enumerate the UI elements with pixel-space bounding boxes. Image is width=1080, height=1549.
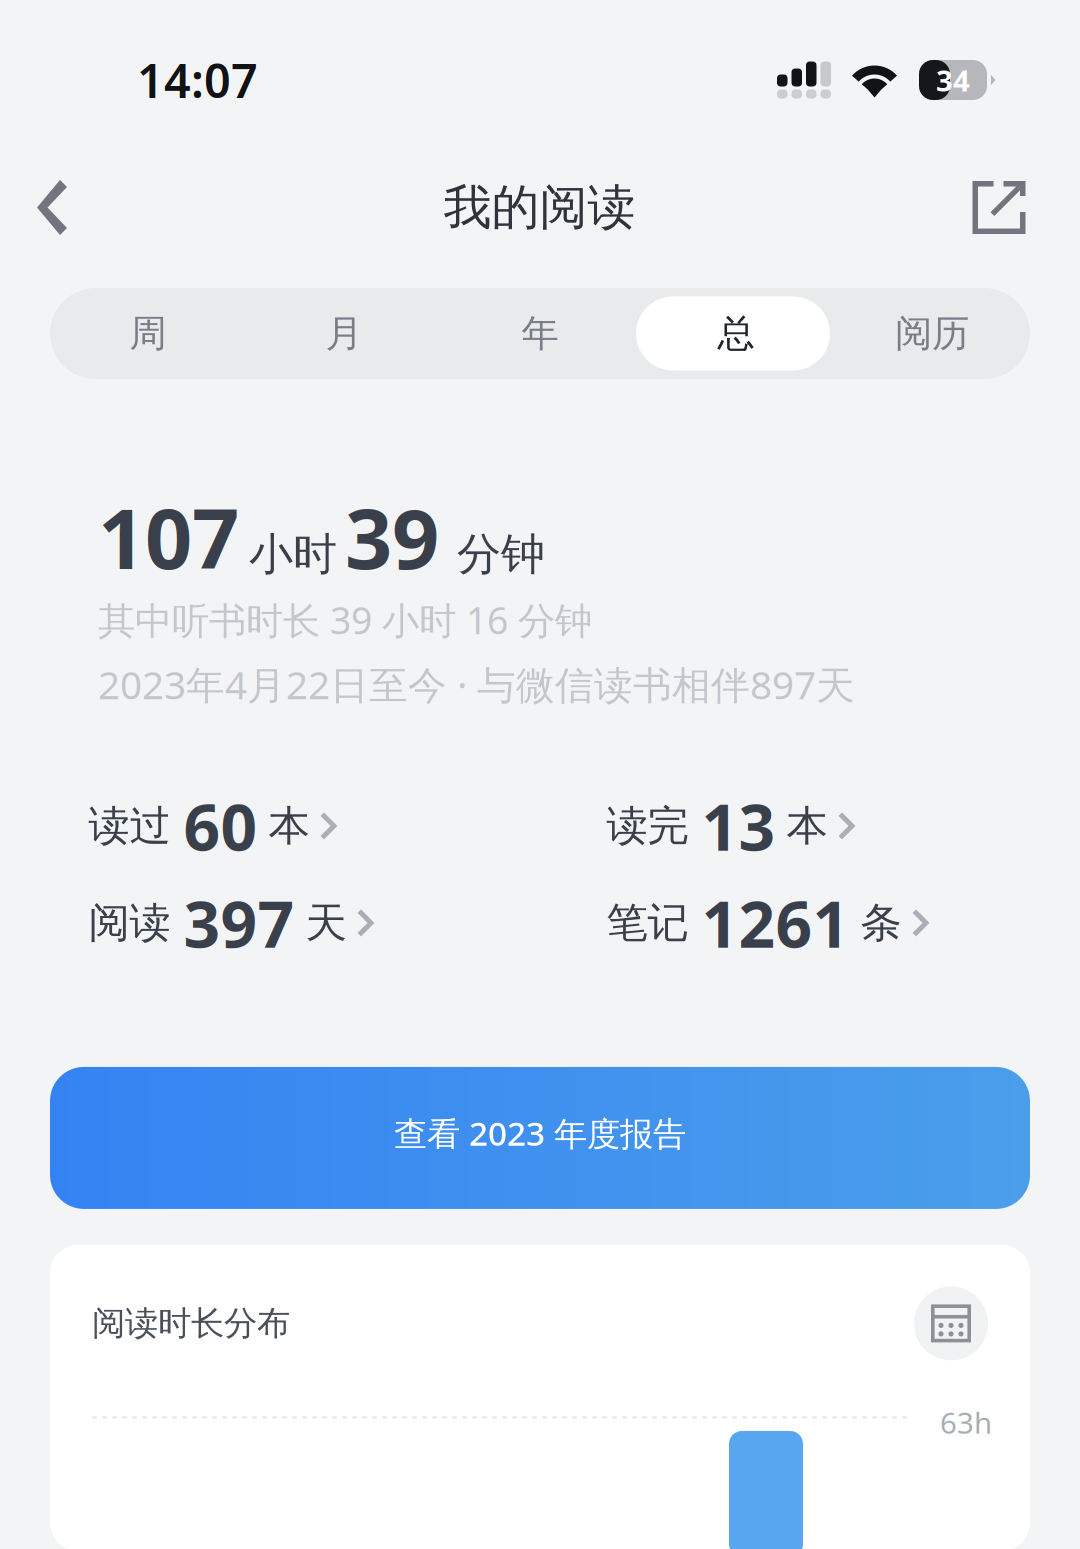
staticText: 13 xyxy=(701,783,775,868)
button[interactable]: 阅历 xyxy=(834,288,1030,379)
button[interactable]: 周 xyxy=(50,288,246,379)
staticText: 小时 xyxy=(249,527,337,581)
button[interactable]: 月 xyxy=(246,288,442,379)
staticText: 总 xyxy=(717,311,754,356)
staticText: 34 xyxy=(936,60,970,99)
staticText: 阅读 xyxy=(88,897,170,948)
staticText: 63h xyxy=(940,1403,992,1442)
button[interactable]: 读过 xyxy=(88,793,606,859)
button[interactable]: 笔记 xyxy=(606,890,1023,956)
button[interactable]: 年 xyxy=(442,288,638,379)
staticText: 107 xyxy=(98,482,239,592)
staticText: 条 xyxy=(860,897,901,948)
staticText: 本 xyxy=(786,800,827,851)
staticText: 39 xyxy=(345,482,439,592)
staticText: 我的阅读 xyxy=(443,178,635,237)
button[interactable]: 查看 2023 年度报告 xyxy=(50,1067,1030,1209)
staticText: 读完 xyxy=(606,800,688,851)
staticText: 年 xyxy=(521,311,558,356)
staticText: 查看 2023 年度报告 xyxy=(394,1111,686,1155)
staticText: 月 xyxy=(325,311,362,356)
button[interactable]: Share xyxy=(956,157,1042,257)
staticText: 读过 xyxy=(88,800,170,851)
button[interactable]: Back xyxy=(9,157,95,257)
staticText: 其中听书时长 39 小时 16 分钟 xyxy=(98,595,592,645)
staticText: 天 xyxy=(305,897,346,948)
staticText: 笔记 xyxy=(606,897,688,948)
button[interactable]: 总 xyxy=(638,288,834,379)
staticText: 14:07 xyxy=(137,49,258,111)
staticText: 周 xyxy=(129,311,166,356)
staticText: 阅历 xyxy=(895,311,969,356)
button[interactable]: 读完 xyxy=(606,793,1023,859)
staticText: 1261 xyxy=(701,880,849,965)
staticText: 阅读时长分布 xyxy=(92,1303,290,1344)
staticText: 分钟 xyxy=(457,527,545,581)
button[interactable]: 阅读 xyxy=(88,890,606,956)
staticText: 2023年4月22日至今 · 与微信读书相伴897天 xyxy=(98,659,855,710)
staticText: 本 xyxy=(268,800,309,851)
staticText: 397 xyxy=(183,880,294,965)
staticText: 60 xyxy=(183,783,257,868)
button[interactable]: Calendar xyxy=(914,1286,988,1360)
